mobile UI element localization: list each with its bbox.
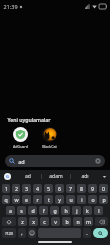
button[interactable]: h [61, 206, 70, 215]
button[interactable]: j [72, 206, 81, 215]
button[interactable]: p [99, 195, 108, 204]
button[interactable]: , [18, 228, 26, 238]
button[interactable]: 9 [88, 184, 97, 193]
staticText: AdGuard [13, 144, 28, 149]
staticText: Yeni uygulamalar [7, 116, 51, 123]
button[interactable]: v [51, 217, 60, 226]
staticText: r [36, 196, 39, 203]
staticText: a [9, 207, 12, 214]
staticText: j [76, 207, 78, 214]
staticText: adı [81, 173, 89, 180]
button[interactable]: n [73, 217, 82, 226]
staticText: w [14, 196, 19, 203]
button[interactable]: BlackCat [36, 126, 62, 150]
staticText: , [21, 230, 23, 237]
staticText: v [54, 218, 57, 225]
staticText: e [25, 196, 28, 203]
other: Google [4, 173, 11, 180]
staticText: 2 [15, 185, 18, 192]
button[interactable]: s [17, 206, 26, 215]
staticText: m [86, 218, 91, 225]
button[interactable]: e [22, 195, 31, 204]
staticText: d [31, 207, 35, 214]
staticText: u [69, 196, 73, 203]
button[interactable]: Clear [95, 158, 101, 164]
button[interactable]: a [6, 206, 15, 215]
button[interactable]: f [39, 206, 48, 215]
staticText: 7 [69, 185, 72, 192]
button[interactable]: Search [93, 228, 108, 238]
button[interactable]: 3 [22, 184, 31, 193]
staticText: G [6, 174, 9, 179]
staticText: adam [49, 173, 63, 180]
button[interactable]: w [12, 195, 20, 204]
button[interactable]: More suggestions [99, 170, 110, 183]
staticText: 4 [36, 185, 39, 192]
button[interactable]: i [77, 195, 86, 204]
staticText: y [58, 196, 61, 203]
staticText: f [43, 207, 45, 214]
staticText: p [102, 196, 106, 203]
staticText: x [32, 218, 35, 225]
staticText: 6 [58, 185, 61, 192]
button[interactable]: AdGuard [7, 126, 33, 150]
staticText: b [65, 218, 69, 225]
staticText: l [98, 207, 100, 214]
button[interactable]: Shift [2, 217, 16, 226]
staticText: ad [18, 158, 25, 165]
staticText: t [48, 196, 50, 203]
staticText: q [4, 196, 8, 203]
button[interactable]: 0 [99, 184, 108, 193]
staticText: ad [25, 173, 31, 180]
button[interactable]: adı [71, 170, 99, 183]
staticText: i [81, 196, 83, 203]
button[interactable]: q [2, 195, 10, 204]
button[interactable]: k [83, 206, 92, 215]
button[interactable]: x [29, 217, 38, 226]
staticText: k [86, 207, 89, 214]
button[interactable]: c [40, 217, 49, 226]
staticText: n [76, 218, 80, 225]
button[interactable]: Search [5, 155, 105, 167]
button[interactable]: 8 [77, 184, 86, 193]
button[interactable]: d [28, 206, 37, 215]
staticText: c [43, 218, 46, 225]
button[interactable]: ad [14, 170, 41, 183]
button[interactable]: 1 [2, 184, 10, 193]
button[interactable]: adam [42, 170, 70, 183]
button[interactable]: Emoji [28, 228, 36, 238]
button[interactable]: . [83, 228, 91, 238]
button[interactable]: t [44, 195, 53, 204]
other: Search [9, 158, 15, 164]
staticText: s [20, 207, 23, 214]
button[interactable]: u [66, 195, 75, 204]
staticText: 3 [25, 185, 28, 192]
staticText: BlackCat [42, 144, 57, 149]
button[interactable]: 7 [66, 184, 75, 193]
button[interactable]: o [88, 195, 97, 204]
button[interactable]: r [33, 195, 42, 204]
button[interactable]: g [50, 206, 59, 215]
staticText: 21:39 [3, 3, 18, 10]
button[interactable]: y [55, 195, 64, 204]
button[interactable]: 5 [44, 184, 53, 193]
button[interactable]: b [62, 217, 71, 226]
button[interactable]: Google [0, 170, 14, 183]
staticText: 9 [91, 185, 94, 192]
staticText: g [53, 207, 57, 214]
button[interactable]: 2 [12, 184, 20, 193]
staticText: o [91, 196, 95, 203]
staticText: 8 [80, 185, 83, 192]
staticText: 1 [5, 185, 8, 192]
button[interactable]: Backspace [95, 217, 108, 226]
button[interactable]: z [18, 217, 27, 226]
button[interactable]: ?123 [2, 228, 16, 238]
staticText: ?123 [5, 231, 13, 236]
button[interactable]: 4 [33, 184, 42, 193]
button[interactable]: l [94, 206, 103, 215]
button[interactable]: m [84, 217, 93, 226]
button[interactable]: 6 [55, 184, 64, 193]
staticText: . [86, 230, 88, 237]
staticText: 5 [47, 185, 50, 192]
